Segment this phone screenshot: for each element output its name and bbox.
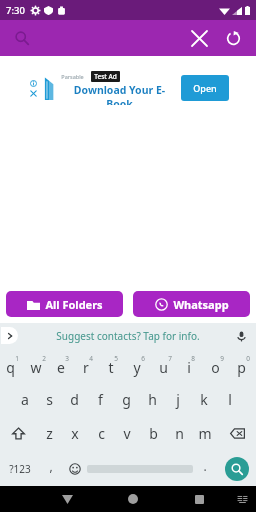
button[interactable]: Emoji [63,451,87,486]
button[interactable]: Shift [0,416,37,451]
staticText: g [122,390,131,409]
button[interactable]: r [75,348,100,382]
button[interactable]: Open [181,75,229,101]
staticText: 3 [65,354,69,363]
button[interactable]: x [62,416,88,451]
button[interactable]: Recents [186,486,212,512]
staticText: Suggest contacts? Tap for info. [56,329,200,343]
button[interactable]: , [39,451,63,486]
staticText: f [98,390,103,409]
button[interactable]: Refresh [216,21,250,55]
button[interactable]: l [217,382,243,416]
staticText: Test Ad [94,72,117,81]
button[interactable]: i [178,348,204,382]
staticText: w [30,358,42,377]
button[interactable]: Expand suggestions [1,327,18,344]
staticText: 8 [191,354,195,363]
staticText: 4 [89,354,93,363]
staticText: y [133,358,141,377]
staticText: ?123 [9,462,31,476]
button[interactable]: v [114,416,140,451]
button[interactable]: Voice input [232,327,250,345]
staticText: j [176,390,180,409]
button[interactable]: Parsable [24,68,232,108]
button[interactable]: f [87,382,113,416]
staticText: Open [193,82,217,94]
button[interactable]: Switch keyboard [230,487,254,511]
button[interactable]: t [100,348,126,382]
staticText: k [200,390,208,409]
staticText: 1 [15,354,19,363]
staticText: . [203,458,207,474]
staticText: a [21,390,29,409]
button[interactable]: Home [120,486,146,512]
button[interactable]: Hide keyboard [54,486,80,512]
button[interactable]: c [88,416,114,451]
staticText: s [46,390,53,409]
staticText: r [83,358,89,377]
staticText: u [159,358,168,377]
button[interactable]: Clear [182,21,216,55]
staticText: l [228,390,232,409]
staticText: i [187,358,191,377]
staticText: b [149,424,158,443]
button[interactable]: Whatsapp [133,291,250,317]
button[interactable]: m [192,416,218,451]
staticText: Download Your E-Book [61,83,178,105]
button[interactable]: q [0,348,25,382]
button[interactable]: n [166,416,192,451]
button[interactable]: Search [8,24,36,52]
staticText: 6 [141,354,145,363]
staticText: x [71,424,79,443]
button[interactable]: d [62,382,87,416]
staticText: 7:30 [6,4,25,17]
button[interactable]: k [191,382,217,416]
button[interactable]: Backspace [218,416,256,451]
staticText: o [211,358,220,377]
staticText: q [6,358,15,377]
button[interactable]: p [230,348,256,382]
button[interactable]: a [12,382,37,416]
staticText: n [175,424,184,443]
staticText: e [57,358,65,377]
button[interactable]: u [152,348,178,382]
staticText: t [108,358,114,377]
button[interactable]: z [37,416,62,451]
staticText: h [148,390,157,409]
button[interactable]: y [126,348,152,382]
button[interactable]: h [139,382,165,416]
button[interactable]: o [204,348,230,382]
staticText: d [70,390,79,409]
staticText: z [46,424,53,443]
button[interactable]: e [50,348,75,382]
staticText: Parsable [61,73,84,80]
button[interactable]: Space [87,461,193,476]
staticText: Whatsapp [173,297,229,312]
staticText: m [198,424,212,443]
button[interactable]: w [25,348,50,382]
staticText: 5 [114,354,118,363]
staticText: p [237,358,246,377]
staticText: 9 [220,354,224,363]
button[interactable]: b [140,416,166,451]
button[interactable]: s [37,382,62,416]
button[interactable]: ?123 [0,451,39,486]
staticText: , [49,458,53,474]
staticText: 7 [168,354,172,363]
staticText: v [123,424,131,443]
button[interactable]: j [165,382,191,416]
staticText: 0 [246,354,250,363]
button[interactable]: . [193,451,217,486]
staticText: 2 [42,354,46,363]
staticText: c [98,424,105,443]
staticText: All Folders [45,297,103,312]
button[interactable]: All Folders [6,291,123,317]
button[interactable]: Search [225,457,249,481]
button[interactable]: g [113,382,139,416]
